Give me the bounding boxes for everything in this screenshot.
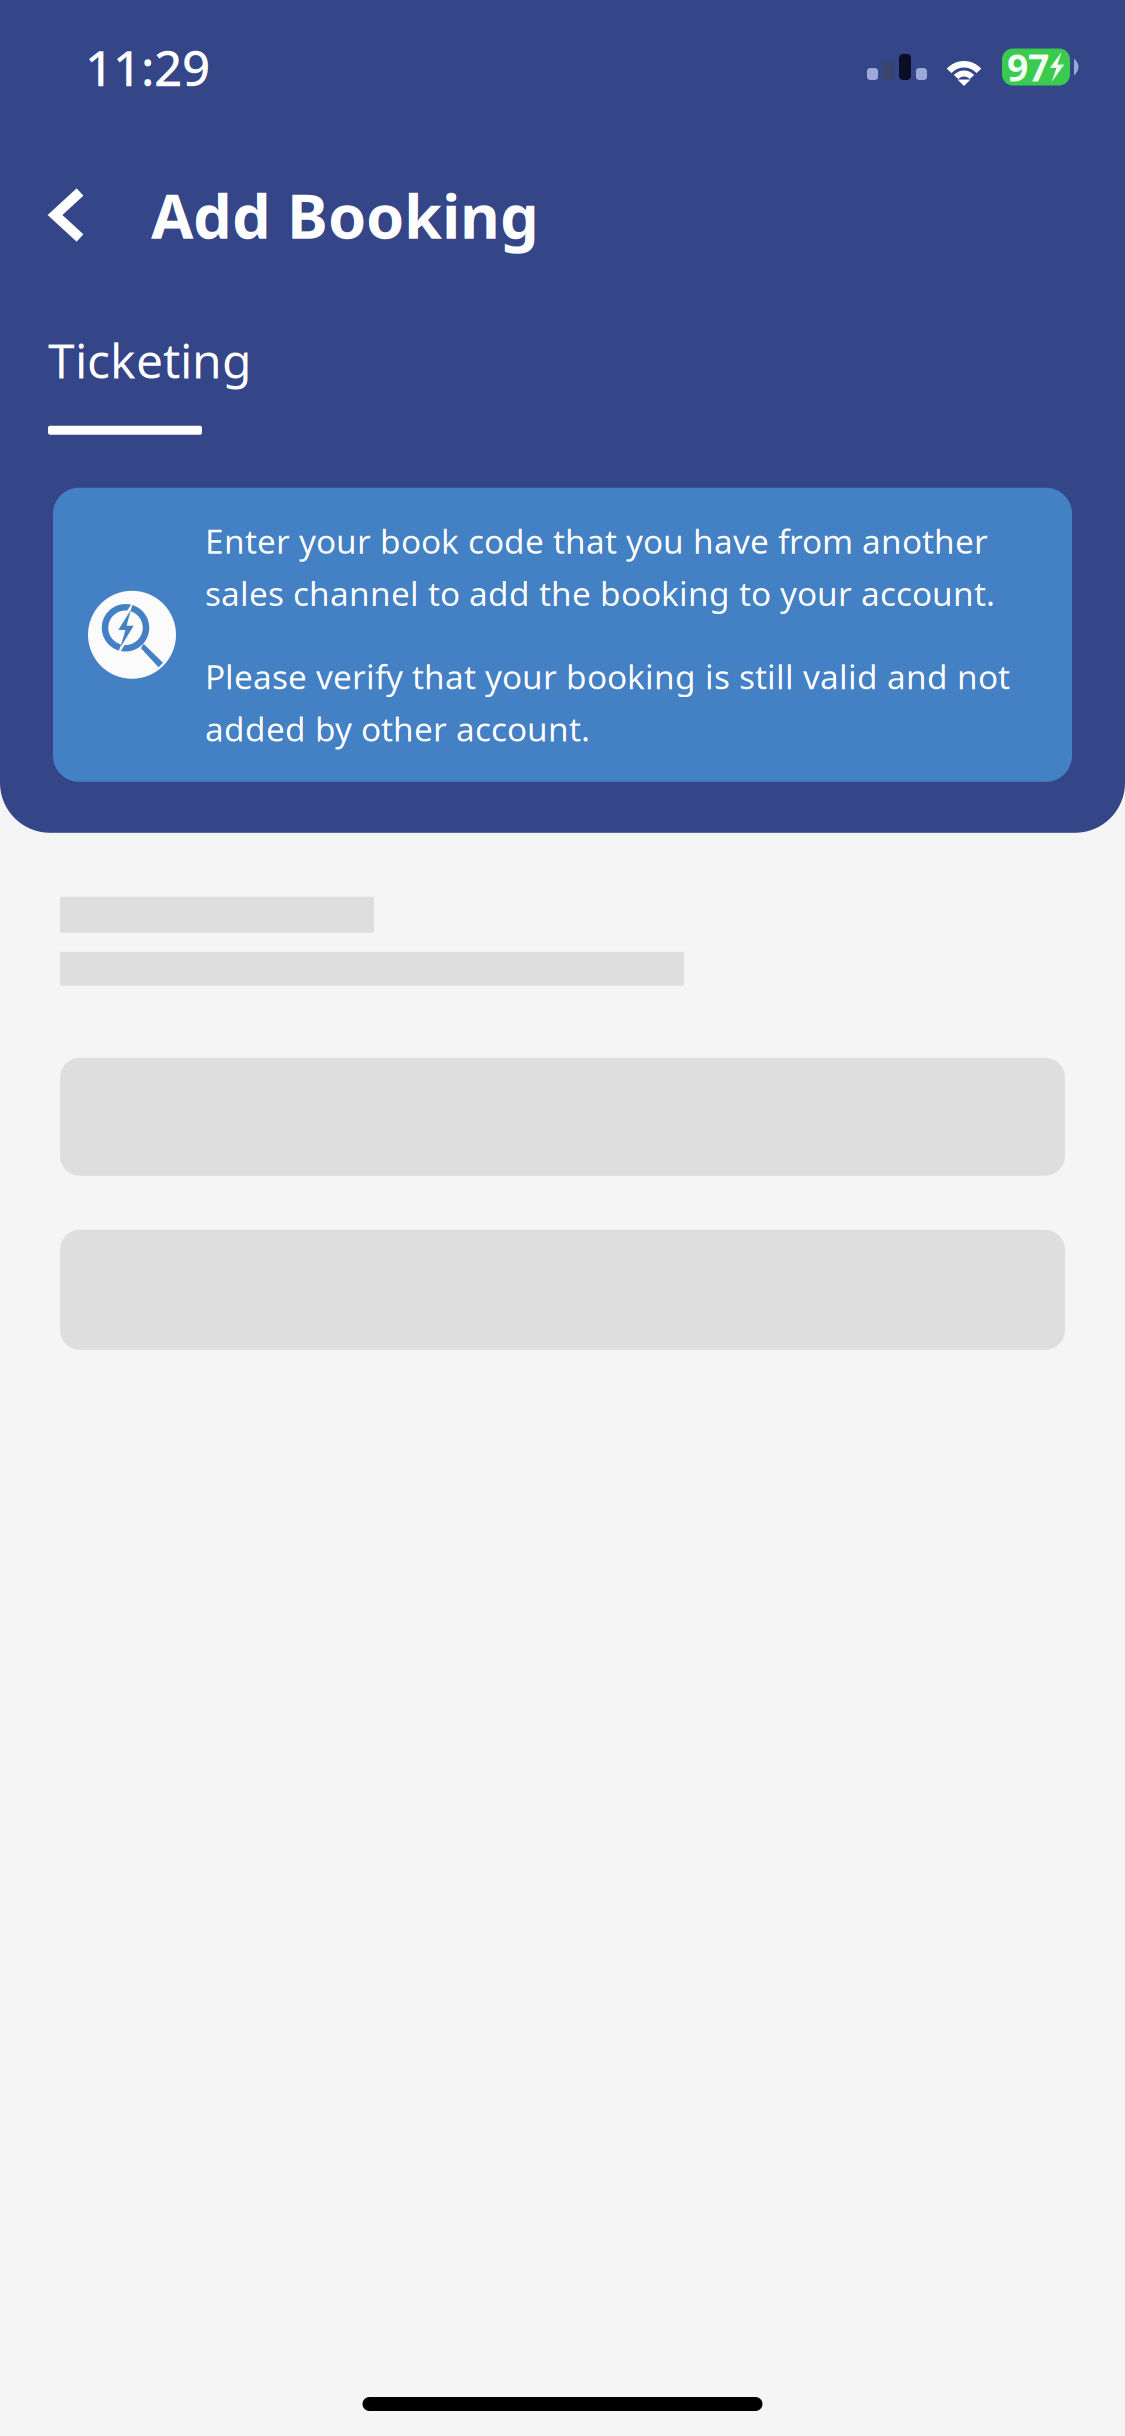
staticText: Enter your book code that you have from … <box>205 519 988 563</box>
staticText: Add Booking <box>151 174 539 256</box>
staticText: 11:29 <box>85 34 210 100</box>
button[interactable]: Ticketing <box>0 246 252 435</box>
staticText: added by other account. <box>205 706 590 751</box>
button[interactable]: Back <box>0 184 151 246</box>
staticText: Please verify that your booking is still… <box>205 654 1010 699</box>
staticText: 97 <box>1007 42 1049 92</box>
staticText: Ticketing <box>48 328 252 392</box>
staticText: sales channel to add the booking to your… <box>205 571 995 615</box>
